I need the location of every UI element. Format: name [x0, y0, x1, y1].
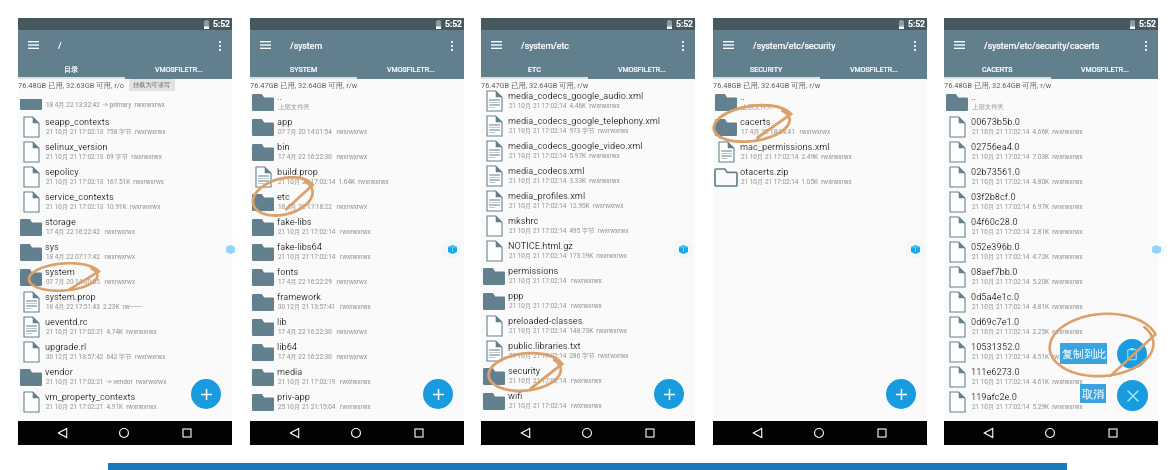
button[interactable]: Recent apps	[640, 421, 660, 445]
button[interactable]: mkshrc	[481, 215, 695, 240]
button[interactable]: Cancel	[1117, 380, 1148, 411]
button[interactable]: VMOSFILETR...	[820, 59, 927, 79]
button[interactable]: sepolicy	[18, 166, 232, 191]
button[interactable]: VMOSFILETR...	[1051, 59, 1158, 79]
button[interactable]: otacerts.zip	[713, 166, 927, 191]
button[interactable]: system	[18, 266, 232, 291]
button[interactable]: priv-app	[250, 391, 464, 416]
button[interactable]: ..	[944, 91, 1158, 116]
button[interactable]: cacerts	[713, 116, 927, 141]
button[interactable]: app	[250, 116, 464, 141]
button[interactable]: Add	[886, 379, 916, 409]
button[interactable]: public.libraries.txt	[481, 340, 695, 365]
button[interactable]: More options	[677, 40, 689, 52]
button[interactable]: service_contexts	[18, 191, 232, 216]
button[interactable]: selinux_version	[18, 141, 232, 166]
button[interactable]: media_codecs_google_video.xml	[481, 140, 695, 165]
button[interactable]: Home	[346, 421, 366, 445]
button[interactable]: build.prop	[250, 166, 464, 191]
button[interactable]: 复制到此	[1060, 343, 1107, 364]
button[interactable]: lib	[250, 316, 464, 341]
button[interactable]: Back	[747, 421, 767, 445]
button[interactable]: VMOSFILETR...	[588, 59, 695, 79]
button[interactable]: ..	[713, 91, 927, 116]
button[interactable]: Navigation menu	[260, 41, 271, 49]
button[interactable]: fonts	[250, 266, 464, 291]
button[interactable]: VMOS assistant	[905, 239, 925, 259]
button[interactable]: 08aef7bb.0	[944, 266, 1158, 291]
button[interactable]: Navigation menu	[28, 41, 39, 49]
button[interactable]: vm_property_contexts	[18, 391, 232, 416]
button[interactable]: media_profiles.xml	[481, 190, 695, 215]
button[interactable]: SYSTEM	[250, 59, 357, 79]
button[interactable]: seapp_contexts	[18, 116, 232, 141]
button[interactable]: 04f60c28.0	[944, 216, 1158, 241]
button[interactable]: etc	[250, 191, 464, 216]
button[interactable]: preloaded-classes	[481, 315, 695, 340]
button[interactable]: media_codecs.xml	[481, 165, 695, 190]
button[interactable]: 0d5a4e1c.0	[944, 291, 1158, 316]
button[interactable]: 00673b5b.0	[944, 116, 1158, 141]
button[interactable]: permissions	[481, 265, 695, 290]
button[interactable]: system.prop	[18, 291, 232, 316]
button[interactable]: NOTICE.html.gz	[481, 240, 695, 265]
button[interactable]: Add	[423, 379, 453, 409]
button[interactable]: Add	[191, 379, 221, 409]
button[interactable]: security	[481, 365, 695, 390]
button[interactable]: 挂载为可读写	[129, 79, 175, 91]
button[interactable]: Recent apps	[409, 421, 429, 445]
button[interactable]: More options	[909, 40, 921, 52]
button[interactable]: Navigation menu	[954, 41, 965, 49]
button[interactable]: Back	[515, 421, 535, 445]
button[interactable]: 取消	[1080, 384, 1106, 403]
button[interactable]: fake-libs64	[250, 241, 464, 266]
button[interactable]: 03f2b8cf.0	[944, 191, 1158, 216]
button[interactable]: Back	[978, 421, 998, 445]
button[interactable]: ppp	[481, 290, 695, 315]
button[interactable]: Navigation menu	[491, 41, 502, 49]
button[interactable]: Navigation menu	[723, 41, 734, 49]
button[interactable]: Home	[809, 421, 829, 445]
button[interactable]: media	[250, 366, 464, 391]
button[interactable]: VMOS assistant	[442, 239, 462, 259]
button[interactable]: ..	[250, 91, 464, 116]
button[interactable]: sys	[18, 241, 232, 266]
button[interactable]: 02b73561.0	[944, 166, 1158, 191]
button[interactable]: SECURITY	[713, 59, 820, 79]
button[interactable]: ETC	[481, 59, 588, 79]
button[interactable]: Back	[52, 421, 72, 445]
button[interactable]: Add	[654, 379, 684, 409]
button[interactable]: wifi	[481, 390, 695, 415]
button[interactable]: Home	[114, 421, 134, 445]
button[interactable]: mac_permissions.xml	[713, 141, 927, 166]
button[interactable]: Recent apps	[177, 421, 197, 445]
button[interactable]: 目录	[18, 59, 125, 79]
button[interactable]: 0d69c7e1.0	[944, 316, 1158, 341]
button[interactable]: More options	[1140, 40, 1152, 52]
button[interactable]: More options	[214, 40, 226, 52]
button[interactable]: 18 4月 22 13:32:42 -> primary rwxrwxrwx	[18, 91, 232, 116]
button[interactable]: storage	[18, 216, 232, 241]
button[interactable]: VMOSFILETR...	[125, 59, 232, 79]
button[interactable]: media_codecs_google_telephony.xml	[481, 115, 695, 140]
button[interactable]: VMOSFILETR...	[357, 59, 464, 79]
button[interactable]: bin	[250, 141, 464, 166]
button[interactable]: Recent apps	[1103, 421, 1123, 445]
button[interactable]: VMOS assistant	[673, 239, 693, 259]
button[interactable]: ueventd.rc	[18, 316, 232, 341]
button[interactable]: 111e6273.0	[944, 366, 1158, 391]
button[interactable]: More options	[446, 40, 458, 52]
button[interactable]: Home	[1040, 421, 1060, 445]
button[interactable]: CACERTS	[944, 59, 1051, 79]
button[interactable]: Back	[284, 421, 304, 445]
button[interactable]: lib64	[250, 341, 464, 366]
button[interactable]: Home	[577, 421, 597, 445]
button[interactable]: VMOS assistant	[1146, 239, 1166, 259]
button[interactable]: media_codecs_google_audio.xml	[481, 90, 695, 115]
button[interactable]: VMOS assistant	[220, 239, 240, 259]
button[interactable]: 02756ea4.0	[944, 141, 1158, 166]
button[interactable]: Recent apps	[872, 421, 892, 445]
button[interactable]: Paste here	[1117, 339, 1147, 369]
button[interactable]: 052e396b.0	[944, 241, 1158, 266]
button[interactable]: fake-libs	[250, 216, 464, 241]
